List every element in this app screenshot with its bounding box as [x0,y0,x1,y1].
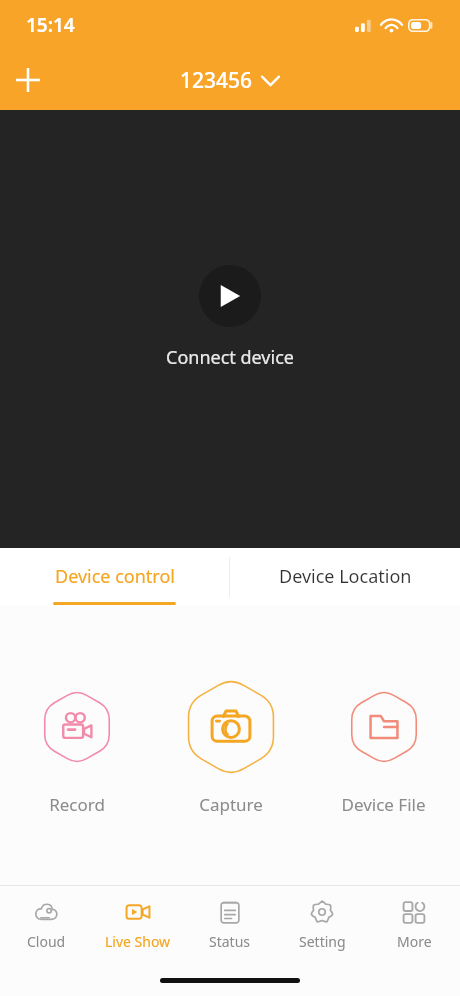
staticText: Setting [299,932,346,951]
button[interactable]: Setting [276,886,368,964]
button[interactable]: Connect device [199,265,261,327]
button[interactable]: Device File [307,677,460,816]
staticText: More [397,932,432,951]
button[interactable]: More [368,886,460,964]
staticText: Record [49,793,105,816]
button[interactable]: Add device [0,52,56,108]
button[interactable]: Record [0,677,154,816]
staticText: Device Location [279,564,412,589]
staticText: Device File [341,793,426,816]
staticText: Capture [199,793,263,816]
button[interactable]: Device control [0,548,229,605]
staticText: Live Show [105,932,171,951]
staticText: Connect device [166,345,294,370]
button[interactable]: Status [184,886,276,964]
button[interactable]: Capture [154,677,307,816]
staticText: Device control [55,564,175,589]
staticText: Cloud [27,932,66,951]
staticText: 123456 [180,66,253,95]
button[interactable]: Cloud [0,886,92,964]
button[interactable]: Live Show [92,886,184,964]
staticText: 15:14 [26,12,75,38]
button[interactable]: Device Location [230,548,460,605]
button[interactable]: 123456 [180,66,279,95]
staticText: Status [209,932,251,951]
